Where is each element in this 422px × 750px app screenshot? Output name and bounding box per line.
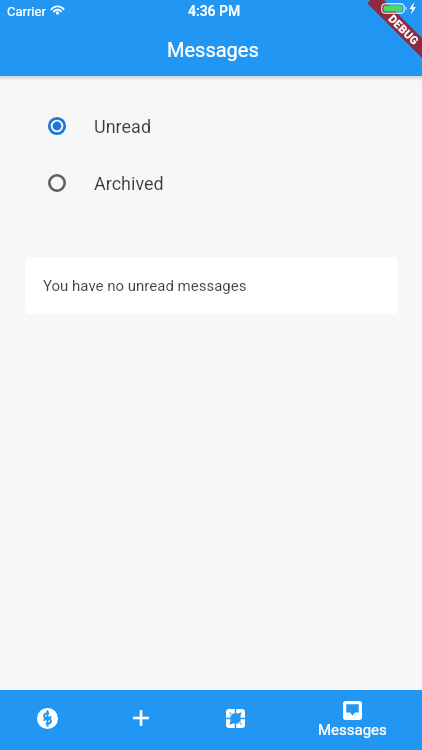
staticText: Unread <box>94 116 152 137</box>
staticText: Messages <box>318 721 387 739</box>
button[interactable]: Add <box>94 690 188 750</box>
staticText: Archived <box>94 173 164 194</box>
button[interactable]: Scan <box>188 690 282 750</box>
staticText: You have no unread messages <box>43 277 247 295</box>
button[interactable]: Archived <box>0 162 422 204</box>
staticText: Carrier <box>7 4 46 19</box>
button[interactable]: Wallet <box>0 690 94 750</box>
button[interactable]: Unread <box>0 105 422 147</box>
staticText: DEBUG <box>386 12 422 48</box>
staticText: 4:36 PM <box>188 3 241 19</box>
staticText: Messages <box>167 38 259 61</box>
button[interactable]: Messages <box>282 690 422 750</box>
button[interactable]: You have no unread messages <box>25 257 398 314</box>
